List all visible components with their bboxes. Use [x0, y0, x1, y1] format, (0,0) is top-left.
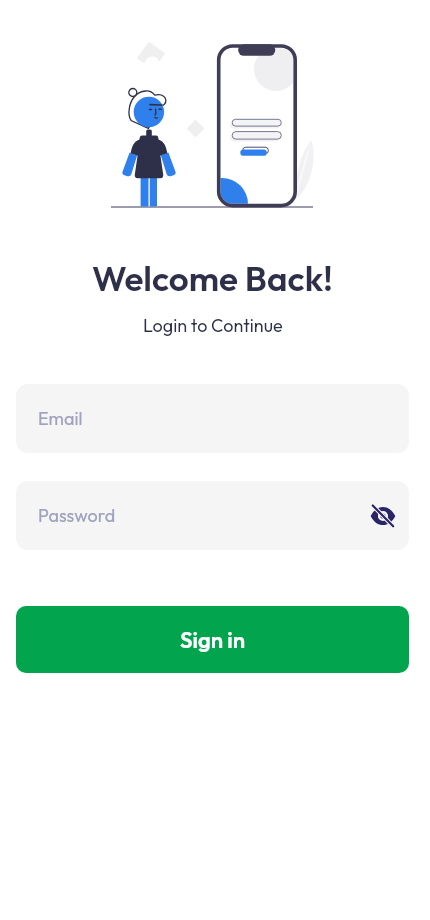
button[interactable]: Sign in — [16, 606, 409, 673]
staticText: Password — [38, 504, 116, 527]
button[interactable]: Email — [16, 384, 409, 453]
staticText: Welcome Back! — [92, 256, 333, 300]
button[interactable]: Password — [16, 481, 409, 550]
staticText: Login to Continue — [143, 314, 283, 337]
staticText: Sign in — [180, 626, 246, 654]
staticText: Email — [38, 407, 83, 430]
button[interactable]: Show password — [359, 492, 406, 539]
